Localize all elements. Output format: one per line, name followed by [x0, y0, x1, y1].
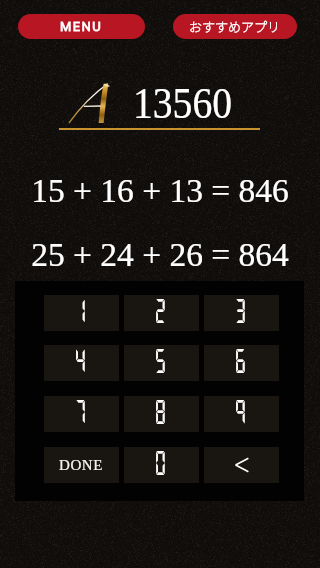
button[interactable]: 8	[124, 396, 199, 432]
staticText: 7	[74, 397, 87, 427]
button[interactable]: 1	[44, 295, 119, 331]
staticText: DONE	[59, 457, 104, 474]
staticText: 5	[154, 346, 167, 376]
button[interactable]: DONE	[44, 447, 119, 483]
button[interactable]	[204, 447, 279, 483]
staticText: 25 + 24 + 26 = 864	[0, 236, 320, 273]
staticText: おすすめアプリ	[189, 17, 281, 36]
button[interactable]: おすすめアプリ	[173, 14, 297, 39]
button[interactable]: 0	[124, 447, 199, 483]
staticText: 3	[234, 296, 247, 326]
staticText: 4	[74, 346, 87, 376]
button[interactable]: 2	[124, 295, 199, 331]
staticText: 15 + 16 + 13 = 846	[0, 172, 320, 209]
button[interactable]: 5	[124, 345, 199, 381]
staticText: 1	[74, 296, 87, 326]
staticText: 13560	[133, 78, 232, 128]
staticText: 9	[234, 397, 247, 427]
button[interactable]: 4	[44, 345, 119, 381]
button[interactable]: MENU	[18, 14, 145, 39]
staticText: 2	[154, 296, 167, 326]
staticText: 0	[154, 448, 167, 478]
button[interactable]: 6	[204, 345, 279, 381]
staticText: MENU	[60, 19, 103, 34]
button[interactable]: 3	[204, 295, 279, 331]
staticText: 6	[234, 346, 247, 376]
button[interactable]: 7	[44, 396, 119, 432]
staticText: 8	[154, 397, 167, 427]
button[interactable]: 9	[204, 396, 279, 432]
